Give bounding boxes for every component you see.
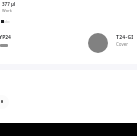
button[interactable]: 377 µl	[0, 0, 137, 15]
staticText: YP24	[0, 34, 11, 41]
staticText: Cover	[116, 41, 129, 47]
staticText: abc	[4, 19, 10, 24]
staticText: Work	[2, 8, 12, 13]
staticText: 377 µl	[2, 1, 16, 7]
button[interactable]: T24-GI	[86, 30, 137, 55]
staticText: T24-GI	[116, 34, 134, 41]
button[interactable]: YP24	[0, 34, 19, 47]
